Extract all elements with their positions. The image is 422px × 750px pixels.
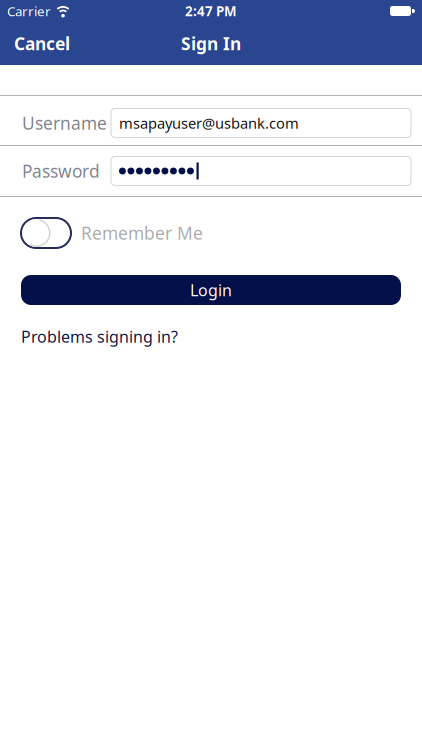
- button[interactable]: msapayuser@usbank.com: [111, 108, 411, 137]
- staticText: 2:47 PM: [185, 2, 237, 20]
- button[interactable]: Password: [111, 156, 411, 185]
- staticText: msapayuser@usbank.com: [119, 113, 299, 133]
- button[interactable]: Login: [21, 275, 401, 305]
- staticText: Problems signing in?: [21, 326, 178, 347]
- staticText: Cancel: [14, 32, 70, 55]
- staticText: Remember Me: [81, 221, 203, 244]
- button[interactable]: Remember Me: [21, 218, 71, 248]
- staticText: Login: [190, 279, 232, 301]
- staticText: Sign In: [181, 32, 241, 55]
- staticText: Carrier: [7, 2, 51, 20]
- button[interactable]: Cancel: [14, 32, 70, 55]
- staticText: Password: [22, 159, 100, 182]
- staticText: Username: [22, 111, 107, 134]
- button[interactable]: Problems signing in?: [21, 326, 178, 347]
